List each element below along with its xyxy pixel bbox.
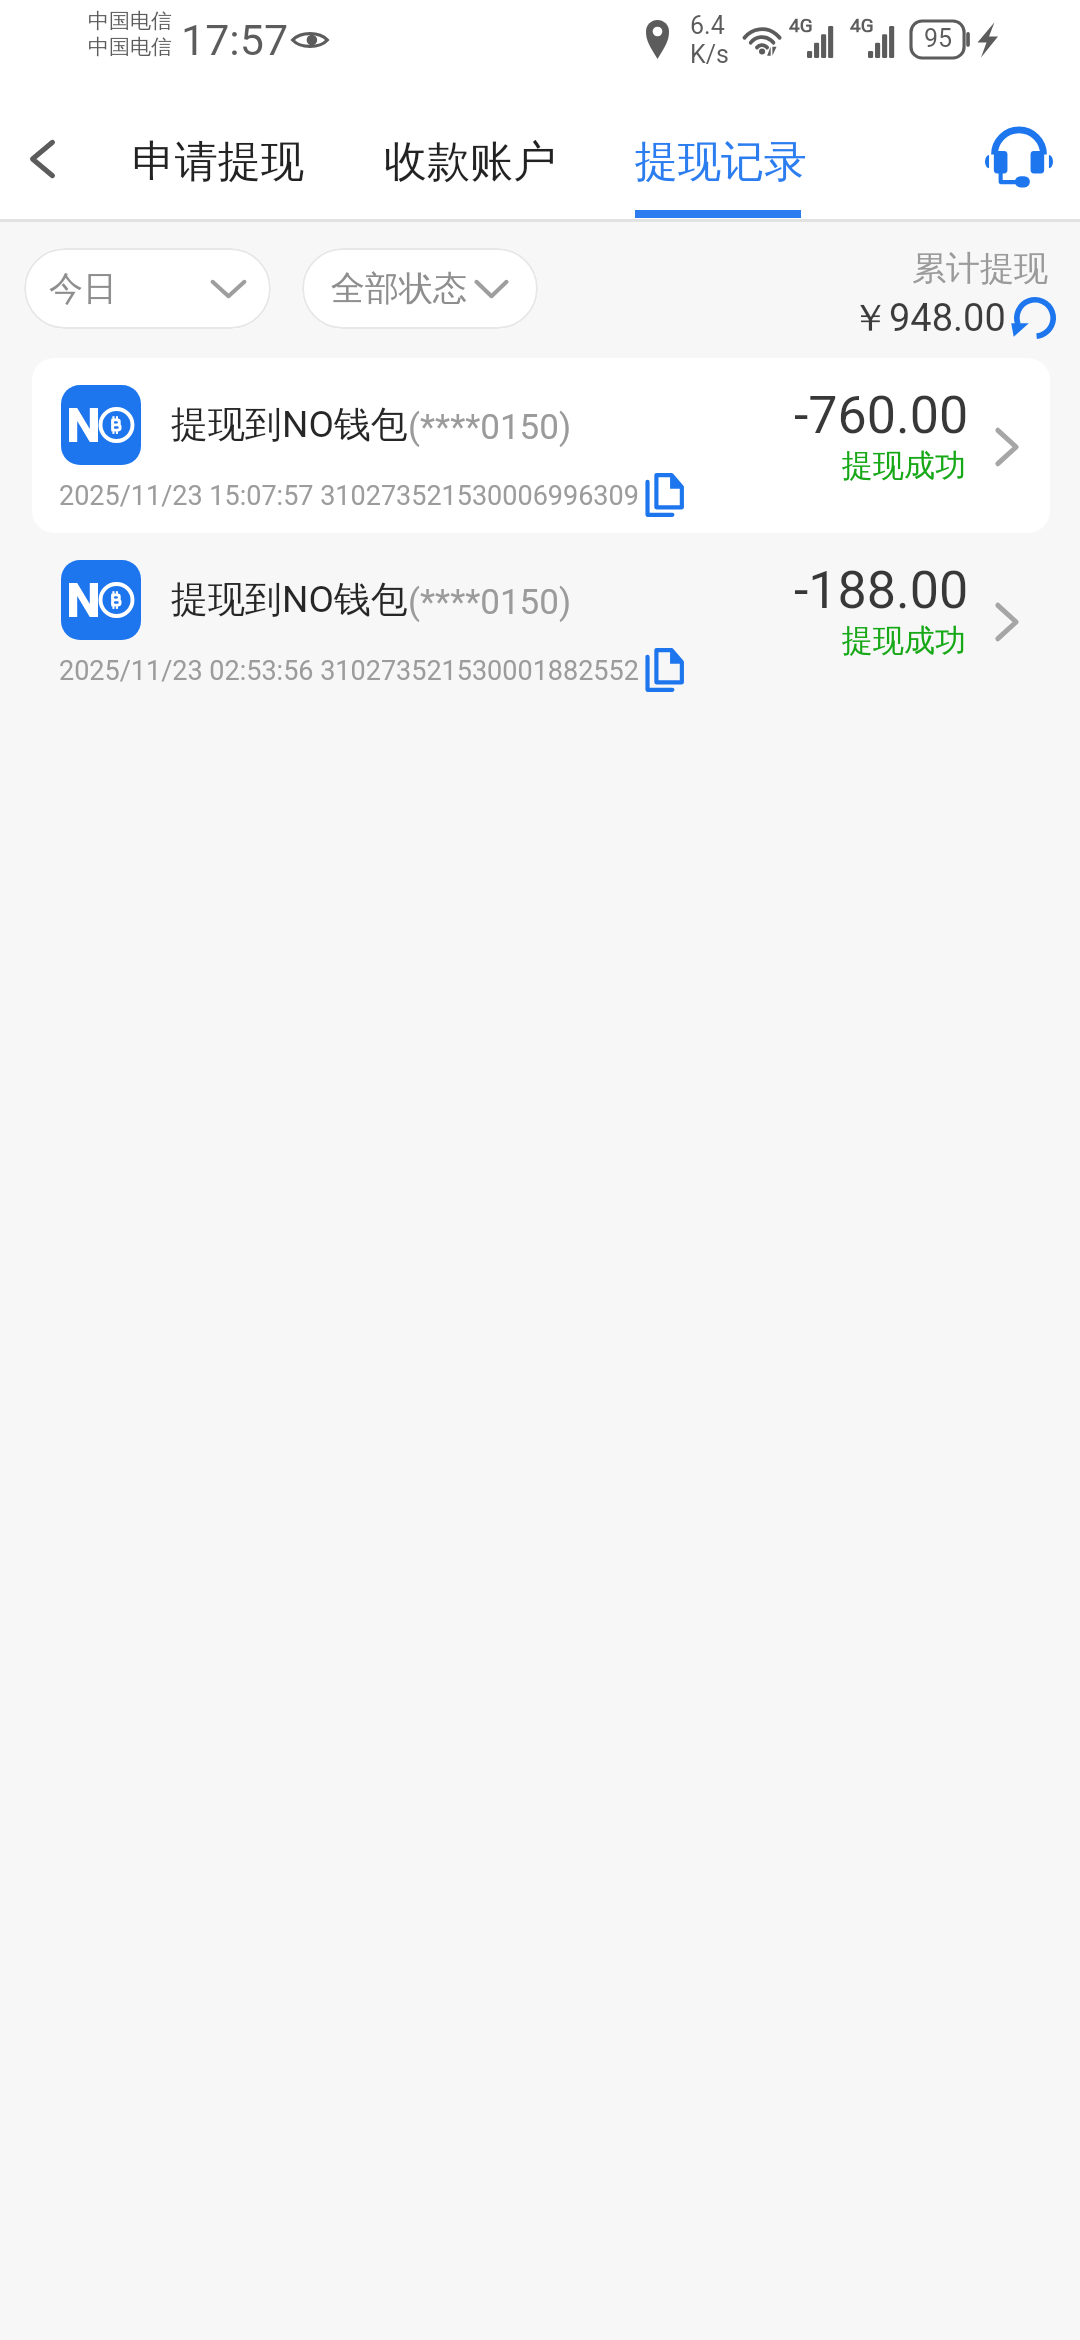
staticText: K/s [690, 40, 729, 69]
button[interactable]: Copy [635, 466, 693, 524]
staticText: 提现记录 [635, 135, 807, 189]
staticText: 4G [789, 14, 813, 36]
button[interactable]: 提现记录 [619, 120, 817, 219]
staticText: 4G [850, 14, 874, 36]
staticText: -760.00 [794, 385, 969, 446]
staticText: ￥948.00 [851, 294, 1006, 342]
staticText: 全部状态 [331, 267, 467, 310]
staticText: 今日 [49, 267, 117, 310]
staticText: 中国电信 [88, 34, 172, 60]
button[interactable]: Copy [635, 641, 693, 699]
button[interactable]: Refresh [1013, 296, 1057, 340]
button[interactable]: 申请提现 [116, 120, 315, 219]
staticText: (****0150) [408, 407, 572, 448]
staticText: 17:57 [181, 15, 289, 65]
staticText: 提现成功 [842, 621, 966, 660]
staticText: 2025/11/23 02:53:56 31027352153000188255… [59, 655, 639, 687]
staticText: 累计提现 [912, 247, 1048, 290]
button[interactable]: 今日 [24, 248, 271, 329]
button[interactable]: 全部状态 [302, 248, 538, 329]
button[interactable]: 提现到NO钱包 [32, 533, 1050, 708]
button[interactable]: Back [12, 129, 72, 189]
staticText: 6.4 [690, 11, 725, 40]
staticText: 提现到NO钱包 [171, 401, 408, 448]
staticText: 申请提现 [132, 135, 304, 189]
button[interactable]: Customer service [981, 121, 1057, 197]
staticText: 95 [924, 24, 953, 53]
staticText: 提现到NO钱包 [171, 576, 408, 623]
staticText: -188.00 [794, 560, 969, 621]
staticText: (****0150) [408, 582, 572, 623]
button[interactable]: 收款账户 [368, 120, 567, 219]
staticText: 2025/11/23 15:07:57 31027352153000699630… [59, 480, 639, 512]
button[interactable]: 提现到NO钱包 [32, 358, 1050, 533]
staticText: 中国电信 [88, 8, 172, 34]
staticText: 提现成功 [842, 446, 966, 485]
staticText: 收款账户 [384, 135, 556, 189]
